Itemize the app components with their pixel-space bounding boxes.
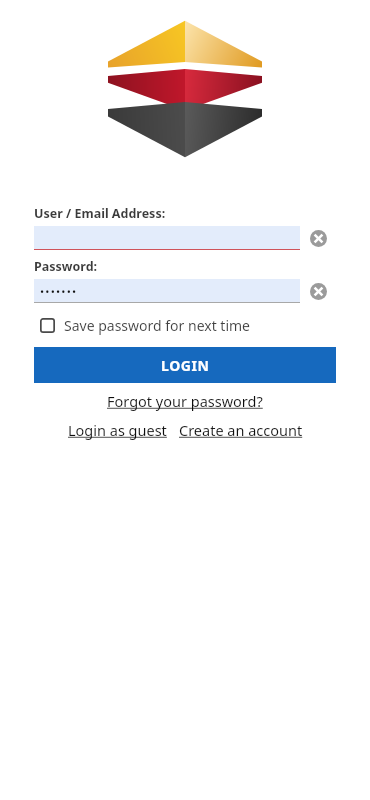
staticText: Password: xyxy=(34,258,98,275)
staticText: ••••••• xyxy=(40,284,78,299)
staticText: LOGIN xyxy=(161,356,210,375)
staticText: User / Email Address: xyxy=(34,205,166,222)
button[interactable]: Clear text xyxy=(300,226,336,250)
button[interactable]: Forgot your password? xyxy=(107,391,263,411)
button[interactable]: Save password for next time xyxy=(34,316,336,335)
button[interactable]: Create an account xyxy=(179,420,303,440)
button[interactable]: ••••••• xyxy=(34,279,336,303)
staticText: Save password for next time xyxy=(64,316,251,335)
staticText: Login as guest xyxy=(68,420,167,440)
button[interactable]: Clear text xyxy=(300,279,336,303)
button[interactable]: Clear text xyxy=(34,226,336,250)
staticText: Create an account xyxy=(179,420,303,440)
button[interactable]: Login as guest xyxy=(68,420,167,440)
button[interactable]: LOGIN xyxy=(34,347,336,383)
staticText: Forgot your password? xyxy=(107,391,263,411)
